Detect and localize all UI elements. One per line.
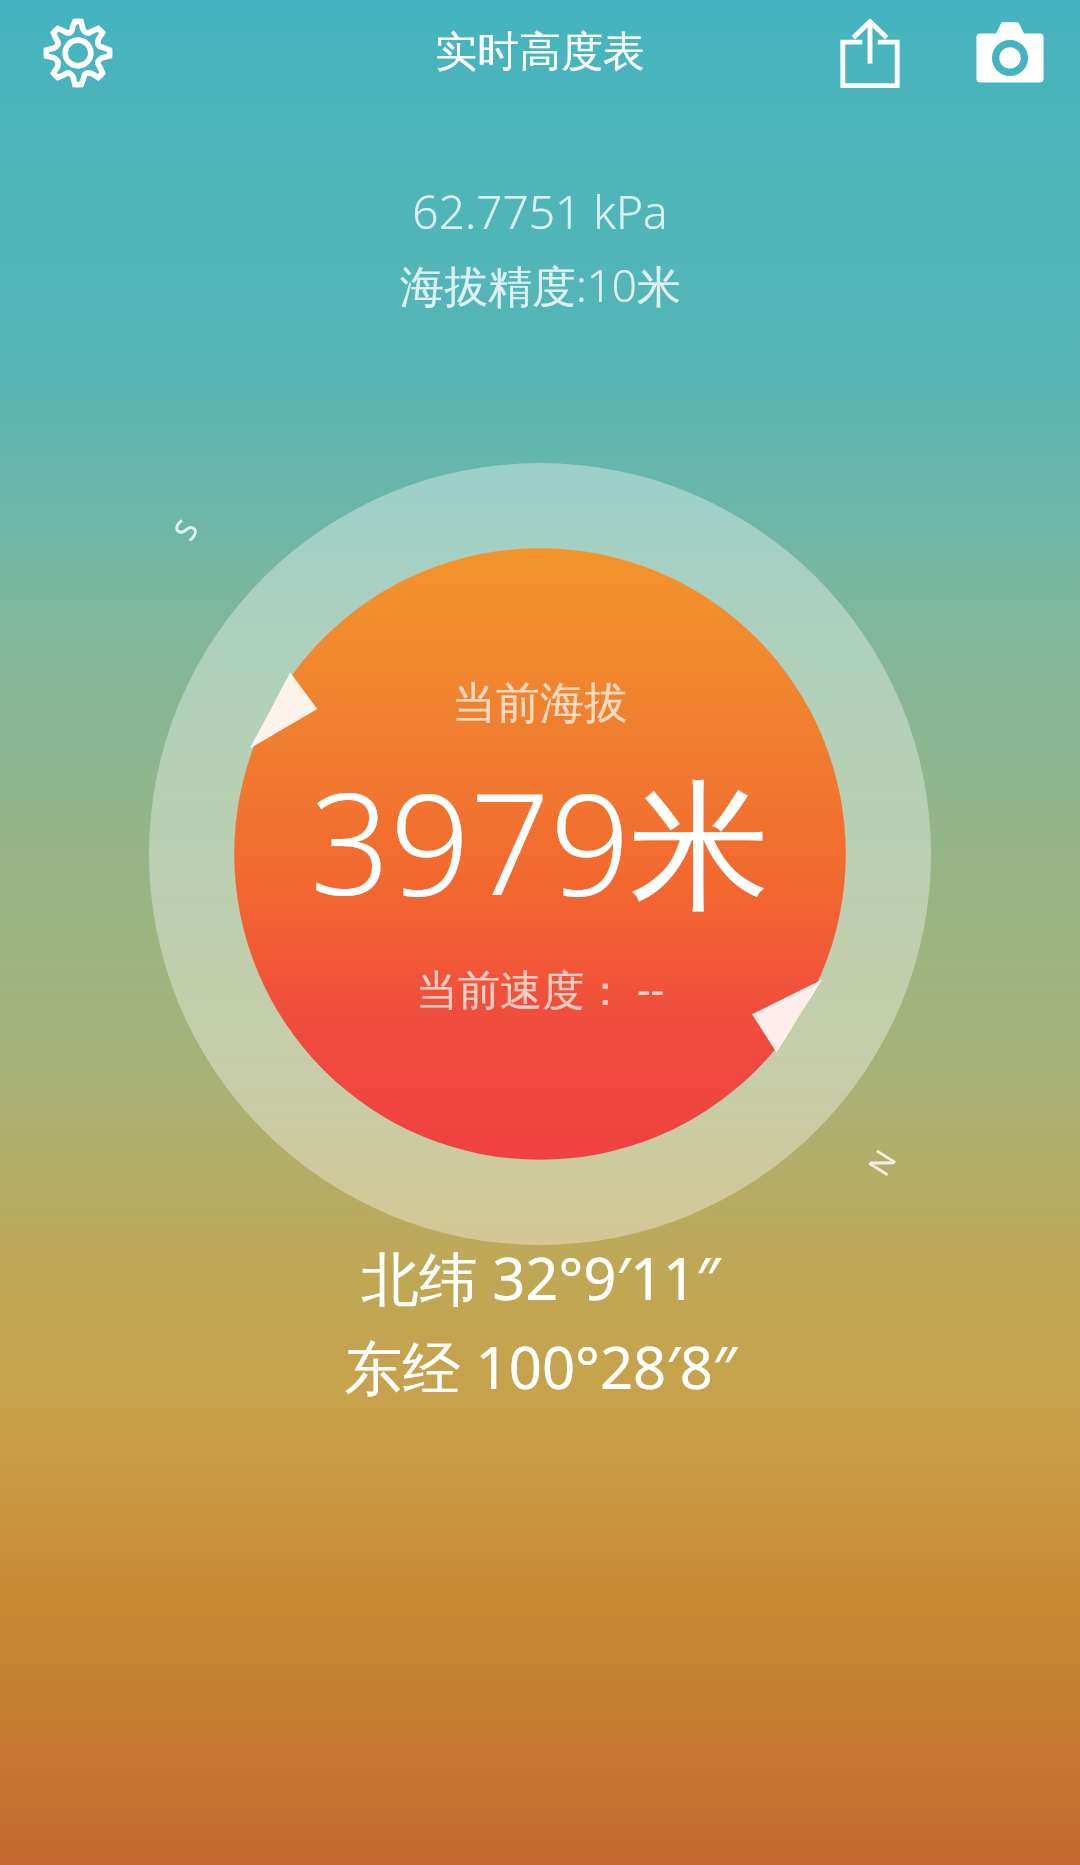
button[interactable]: S bbox=[149, 463, 931, 1245]
staticText: N bbox=[858, 1142, 905, 1183]
staticText: 东经 100°28′8″ bbox=[344, 1327, 737, 1406]
button[interactable]: Settings bbox=[28, 3, 128, 103]
staticText: 3979米 bbox=[310, 745, 770, 936]
staticText: 海拔精度:10米 bbox=[400, 255, 681, 315]
staticText: 当前速度： -- bbox=[416, 960, 664, 1017]
staticText: 北纬 32°9′11″ bbox=[361, 1238, 720, 1317]
staticText: 62.7751 kPa bbox=[412, 180, 668, 243]
button[interactable]: Camera bbox=[962, 5, 1058, 101]
staticText: 当前海拔 bbox=[452, 676, 628, 731]
staticText: 实时高度表 bbox=[435, 26, 645, 79]
button[interactable]: Share bbox=[822, 5, 918, 101]
staticText: S bbox=[164, 511, 207, 547]
